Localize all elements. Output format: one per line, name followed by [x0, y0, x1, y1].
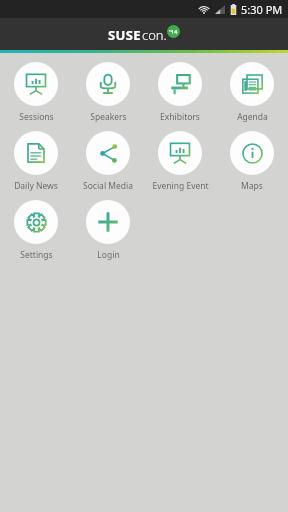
staticText: Maps [241, 180, 263, 192]
staticText: Social Media [83, 180, 133, 192]
button[interactable]: Exhibitors [144, 57, 216, 123]
button[interactable]: Evening Event [144, 126, 216, 192]
staticText: Evening Event [152, 180, 209, 192]
staticText: Sessions [19, 111, 54, 123]
button[interactable]: Social Media [72, 126, 144, 192]
staticText: Login [97, 249, 120, 261]
staticText: 5:30 PM [241, 2, 283, 17]
staticText: SUSE [108, 26, 142, 44]
button[interactable]: Daily News [0, 126, 72, 192]
staticText: Speakers [90, 111, 127, 123]
staticText: con. [142, 26, 167, 44]
button[interactable]: Settings [0, 195, 72, 261]
button[interactable]: Maps [216, 126, 288, 192]
button[interactable]: Speakers [72, 57, 144, 123]
staticText: Exhibitors [160, 111, 200, 123]
staticText: Settings [20, 249, 53, 261]
button[interactable]: Login [72, 195, 144, 261]
staticText: '14 [169, 28, 178, 36]
button[interactable]: Sessions [0, 57, 72, 123]
button[interactable]: Agenda [216, 57, 288, 123]
staticText: Agenda [237, 111, 268, 123]
staticText: Daily News [14, 180, 58, 192]
